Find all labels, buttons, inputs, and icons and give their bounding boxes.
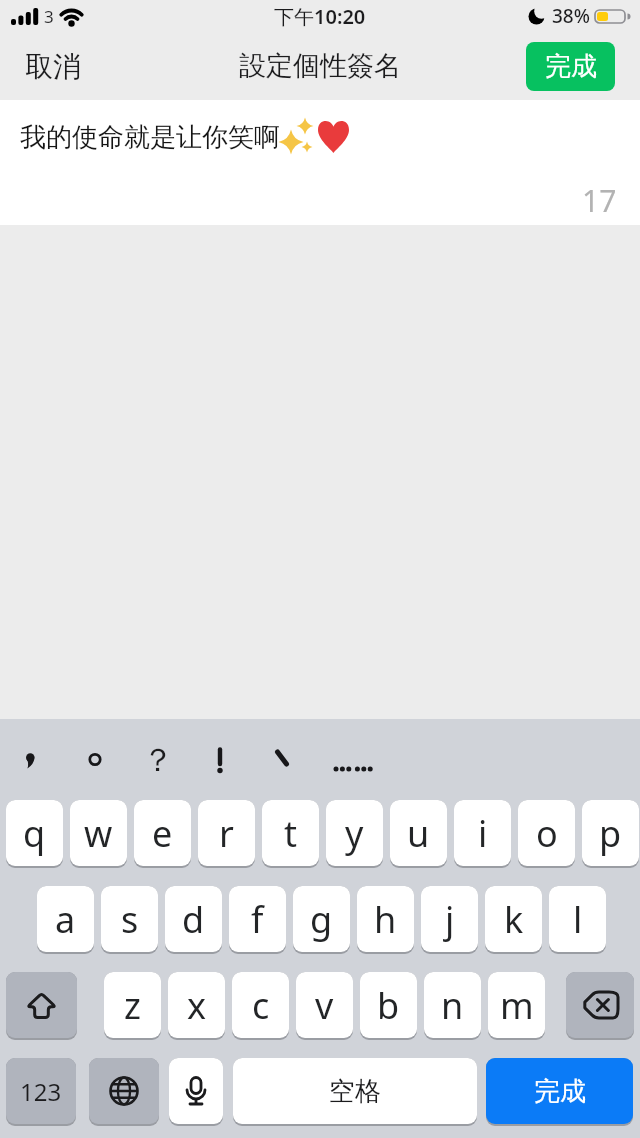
button[interactable]: s	[101, 886, 158, 954]
button[interactable]	[566, 972, 634, 1040]
staticText: 取消	[25, 49, 81, 84]
button[interactable]: x	[168, 972, 225, 1040]
staticText: h	[374, 895, 397, 944]
staticText: i	[478, 809, 488, 858]
button[interactable]: z	[104, 972, 161, 1040]
button[interactable]: 完成	[486, 1058, 633, 1126]
staticText: 設定個性簽名	[239, 49, 401, 83]
button[interactable]	[194, 719, 246, 800]
button[interactable]: ？	[128, 719, 188, 800]
staticText: 123	[20, 1075, 62, 1108]
button[interactable]: q	[6, 800, 63, 868]
staticText: 3	[44, 5, 54, 28]
button[interactable]	[328, 719, 380, 800]
staticText: u	[407, 809, 430, 858]
button[interactable]: 123	[6, 1058, 76, 1126]
staticText: f	[251, 895, 264, 944]
staticText: 17	[582, 180, 617, 221]
button[interactable]: l	[549, 886, 606, 954]
button[interactable]	[257, 719, 309, 800]
staticText: w	[84, 809, 113, 858]
button[interactable]: k	[485, 886, 542, 954]
staticText: 空格	[329, 1075, 381, 1108]
staticText: j	[445, 895, 455, 944]
staticText: 完成	[545, 50, 597, 83]
button[interactable]: u	[390, 800, 447, 868]
button[interactable]: n	[424, 972, 481, 1040]
button[interactable]: 空格	[233, 1058, 477, 1126]
button[interactable]: e	[134, 800, 191, 868]
button[interactable]: w	[70, 800, 127, 868]
staticText: k	[504, 895, 524, 944]
button[interactable]: p	[582, 800, 639, 868]
staticText: g	[310, 895, 333, 944]
button[interactable]: b	[360, 972, 417, 1040]
staticText: l	[573, 895, 583, 944]
staticText: y	[345, 809, 364, 858]
button[interactable]: j	[421, 886, 478, 954]
staticText: d	[182, 895, 205, 944]
staticText: s	[121, 895, 139, 944]
staticText: b	[377, 981, 400, 1030]
button[interactable]	[89, 1058, 159, 1126]
button[interactable]: 取消	[18, 42, 88, 91]
button[interactable]: g	[293, 886, 350, 954]
button[interactable]: c	[232, 972, 289, 1040]
button[interactable]: d	[165, 886, 222, 954]
staticText: v	[315, 981, 334, 1030]
staticText: r	[219, 809, 234, 858]
staticText: 我的使命就是让你笑啊	[20, 121, 280, 154]
staticText: a	[55, 895, 76, 944]
staticText: q	[23, 809, 46, 858]
button[interactable]: t	[262, 800, 319, 868]
staticText: n	[441, 981, 464, 1030]
button[interactable]: h	[357, 886, 414, 954]
button[interactable]	[69, 719, 121, 800]
button[interactable]: i	[454, 800, 511, 868]
staticText: ？	[142, 740, 174, 780]
button[interactable]: a	[37, 886, 94, 954]
staticText: 完成	[534, 1075, 586, 1108]
staticText: p	[599, 809, 622, 858]
button[interactable]	[5, 719, 57, 800]
button[interactable]: y	[326, 800, 383, 868]
button[interactable]: o	[518, 800, 575, 868]
staticText: c	[252, 981, 270, 1030]
button[interactable]: m	[488, 972, 545, 1040]
staticText: z	[124, 981, 141, 1030]
staticText: m	[500, 981, 534, 1030]
staticText: e	[152, 809, 173, 858]
staticText: 38%	[552, 3, 590, 29]
staticText: 下午10:20	[274, 3, 366, 30]
button[interactable]: v	[296, 972, 353, 1040]
button[interactable]: r	[198, 800, 255, 868]
staticText: o	[536, 809, 558, 858]
staticText: t	[284, 809, 297, 858]
staticText: x	[187, 981, 207, 1030]
button[interactable]	[169, 1058, 223, 1126]
button[interactable]: f	[229, 886, 286, 954]
button[interactable]: 完成	[526, 42, 615, 91]
button[interactable]	[6, 972, 77, 1040]
